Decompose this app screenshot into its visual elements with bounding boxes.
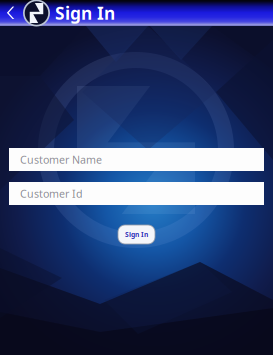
staticText: Sign In [55, 1, 115, 24]
button[interactable]: Back [0, 3, 18, 23]
button[interactable]: Customer Id [9, 182, 264, 205]
staticText: Customer Name [20, 152, 102, 167]
staticText: Customer Id [20, 186, 83, 201]
button[interactable]: Customer Name [9, 148, 264, 171]
button[interactable]: Sign In [118, 225, 155, 244]
staticText: Sign In [125, 230, 148, 239]
